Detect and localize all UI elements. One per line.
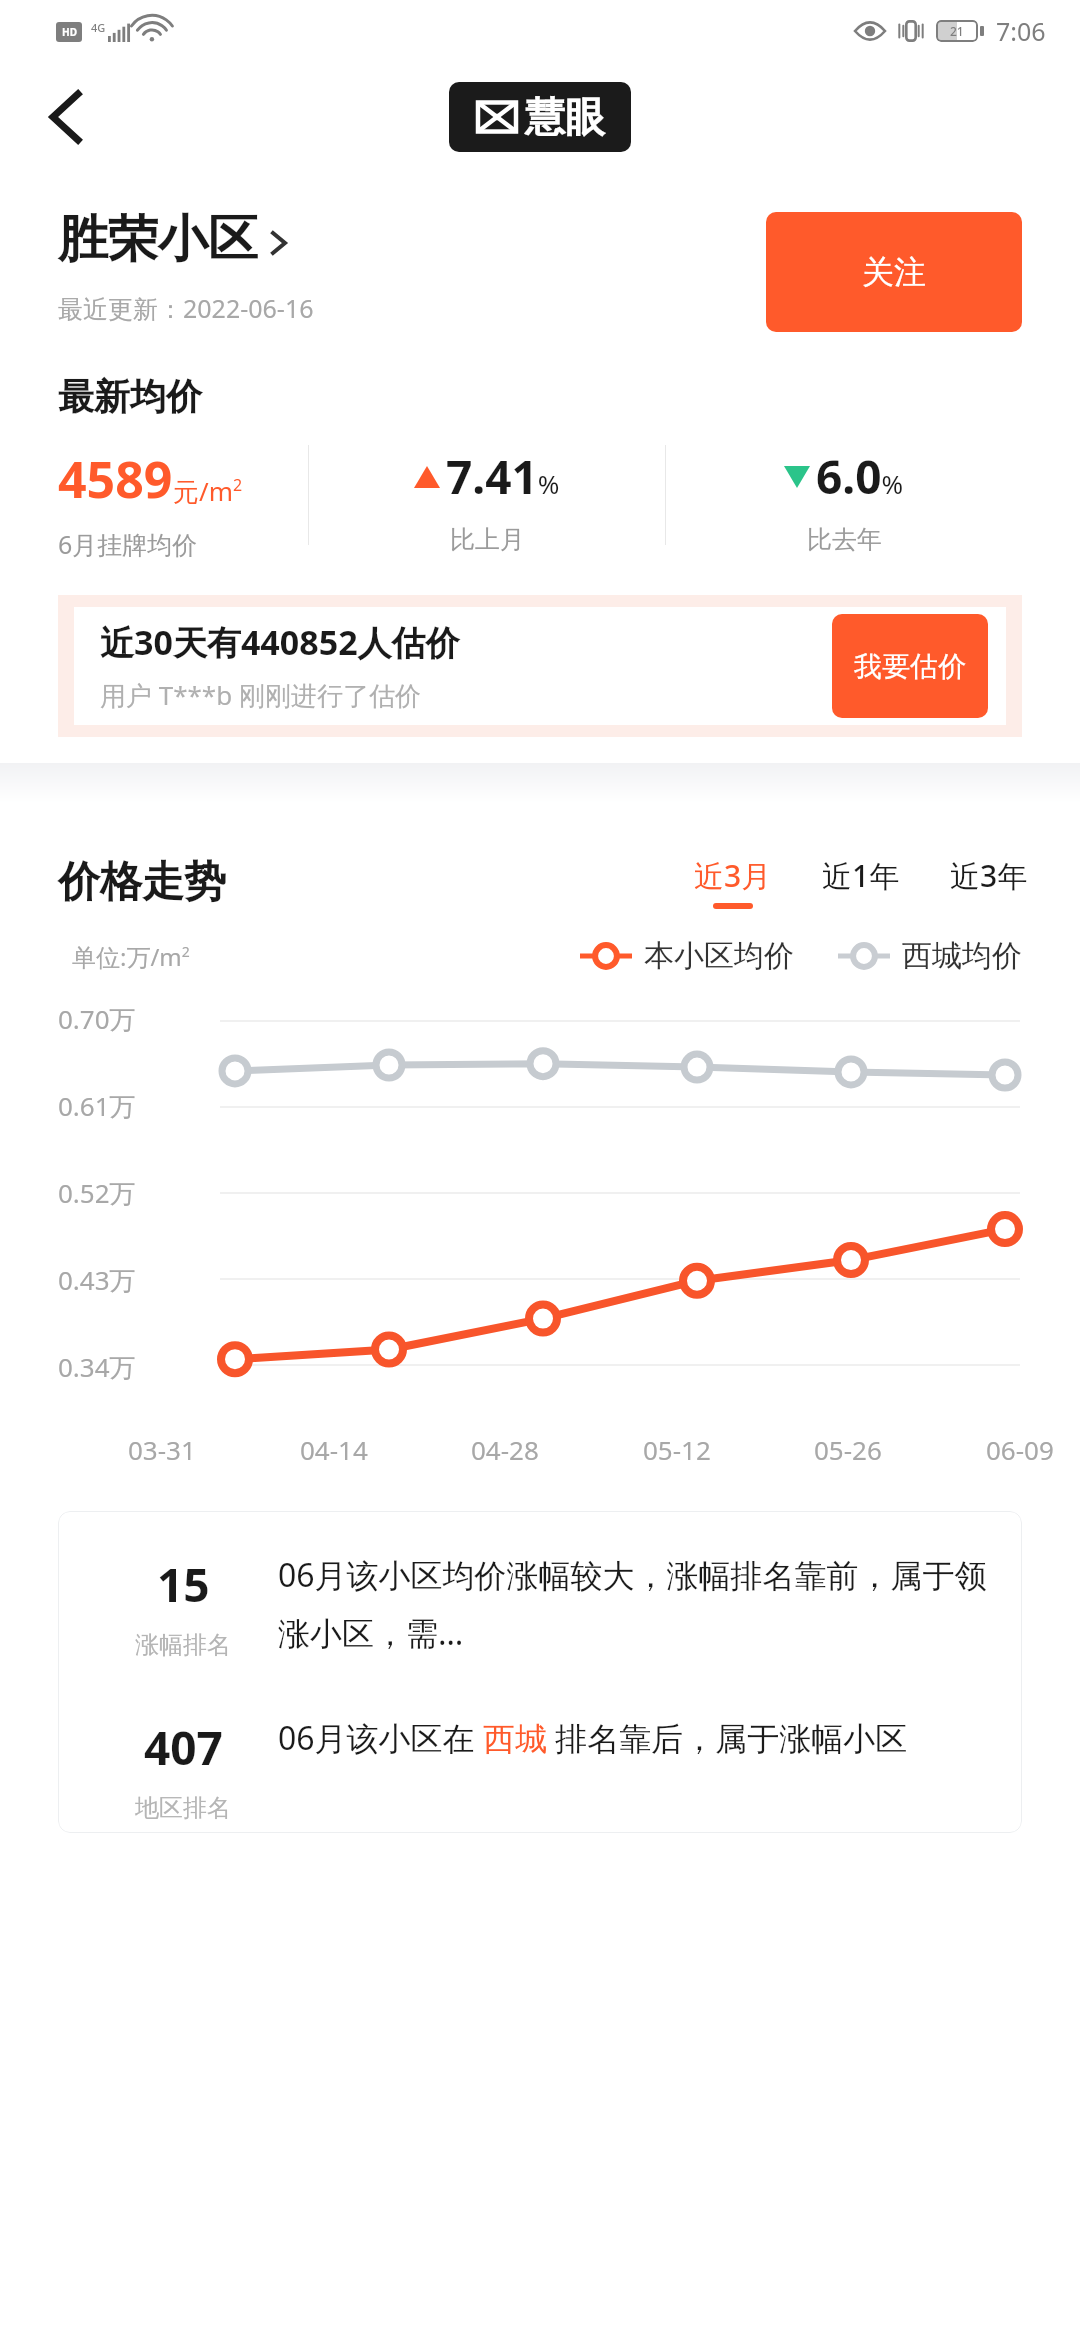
staticText: 用户 T***b 刚刚进行了估价: [100, 677, 421, 713]
staticText: HD: [62, 25, 77, 39]
staticText: 4589: [58, 445, 173, 513]
staticText: 05-26: [814, 1432, 882, 1467]
staticText: 价格走势: [58, 856, 226, 909]
staticText: 近1年: [822, 855, 900, 896]
staticText: 15: [157, 1553, 210, 1616]
staticText: 0.61万: [58, 1088, 136, 1124]
staticText: 0.70万: [58, 1001, 136, 1037]
staticText: 近30天有440852人估价: [100, 619, 460, 665]
button[interactable]: 胜荣小区: [58, 208, 286, 271]
staticText: 本小区均价: [644, 937, 794, 975]
staticText: 我要估价: [854, 649, 966, 684]
staticText: 6.0%: [816, 445, 904, 508]
staticText: 0.34万: [58, 1349, 136, 1385]
button[interactable]: 近30天有440852人估价: [74, 607, 1006, 725]
button[interactable]: 近3月: [690, 851, 776, 913]
staticText: 关注: [862, 252, 926, 292]
staticText: 地区排名: [135, 1793, 231, 1823]
staticText: 4G: [91, 20, 106, 35]
staticText: 7.41%: [446, 445, 560, 508]
staticText: 0.43万: [58, 1262, 136, 1298]
staticText: 单位:万/m2: [72, 940, 190, 973]
staticText: 06月该小区在 西城 排名靠后，属于涨幅小区: [278, 1716, 1004, 1760]
staticText: 慧眼: [525, 92, 605, 142]
staticText: 03-31: [128, 1432, 196, 1467]
staticText: 407: [144, 1716, 223, 1779]
staticText: 胜荣小区: [58, 208, 258, 271]
staticText: 比去年: [807, 524, 882, 555]
button[interactable]: 近3年: [946, 851, 1032, 913]
staticText: 近3年: [950, 855, 1028, 896]
staticText: 西城均价: [902, 937, 1022, 975]
staticText: 最近更新：2022-06-16: [58, 291, 314, 325]
button[interactable]: Back: [34, 86, 96, 148]
staticText: 21: [950, 23, 964, 39]
staticText: 7:06: [996, 14, 1046, 48]
staticText: 04-28: [471, 1432, 539, 1467]
staticText: 比上月: [450, 524, 525, 555]
staticText: 涨幅排名: [135, 1630, 231, 1660]
staticText: 6月挂牌均价: [58, 527, 198, 561]
staticText: 06月该小区均价涨幅较大，涨幅排名靠前，属于领涨小区，需…: [278, 1553, 1004, 1654]
staticText: 0.52万: [58, 1175, 136, 1211]
button[interactable]: 近1年: [818, 851, 904, 913]
staticText: 最新均价: [58, 374, 202, 419]
button[interactable]: 15: [58, 1511, 1022, 1833]
staticText: 06-09: [986, 1432, 1054, 1467]
button[interactable]: 慧眼: [449, 82, 631, 152]
staticText: 04-14: [300, 1432, 368, 1467]
staticText: 近3月: [694, 855, 772, 896]
staticText: 元/m2: [173, 473, 243, 509]
staticText: 05-12: [643, 1432, 711, 1467]
button[interactable]: 我要估价: [832, 614, 988, 718]
button[interactable]: 关注: [766, 212, 1022, 332]
